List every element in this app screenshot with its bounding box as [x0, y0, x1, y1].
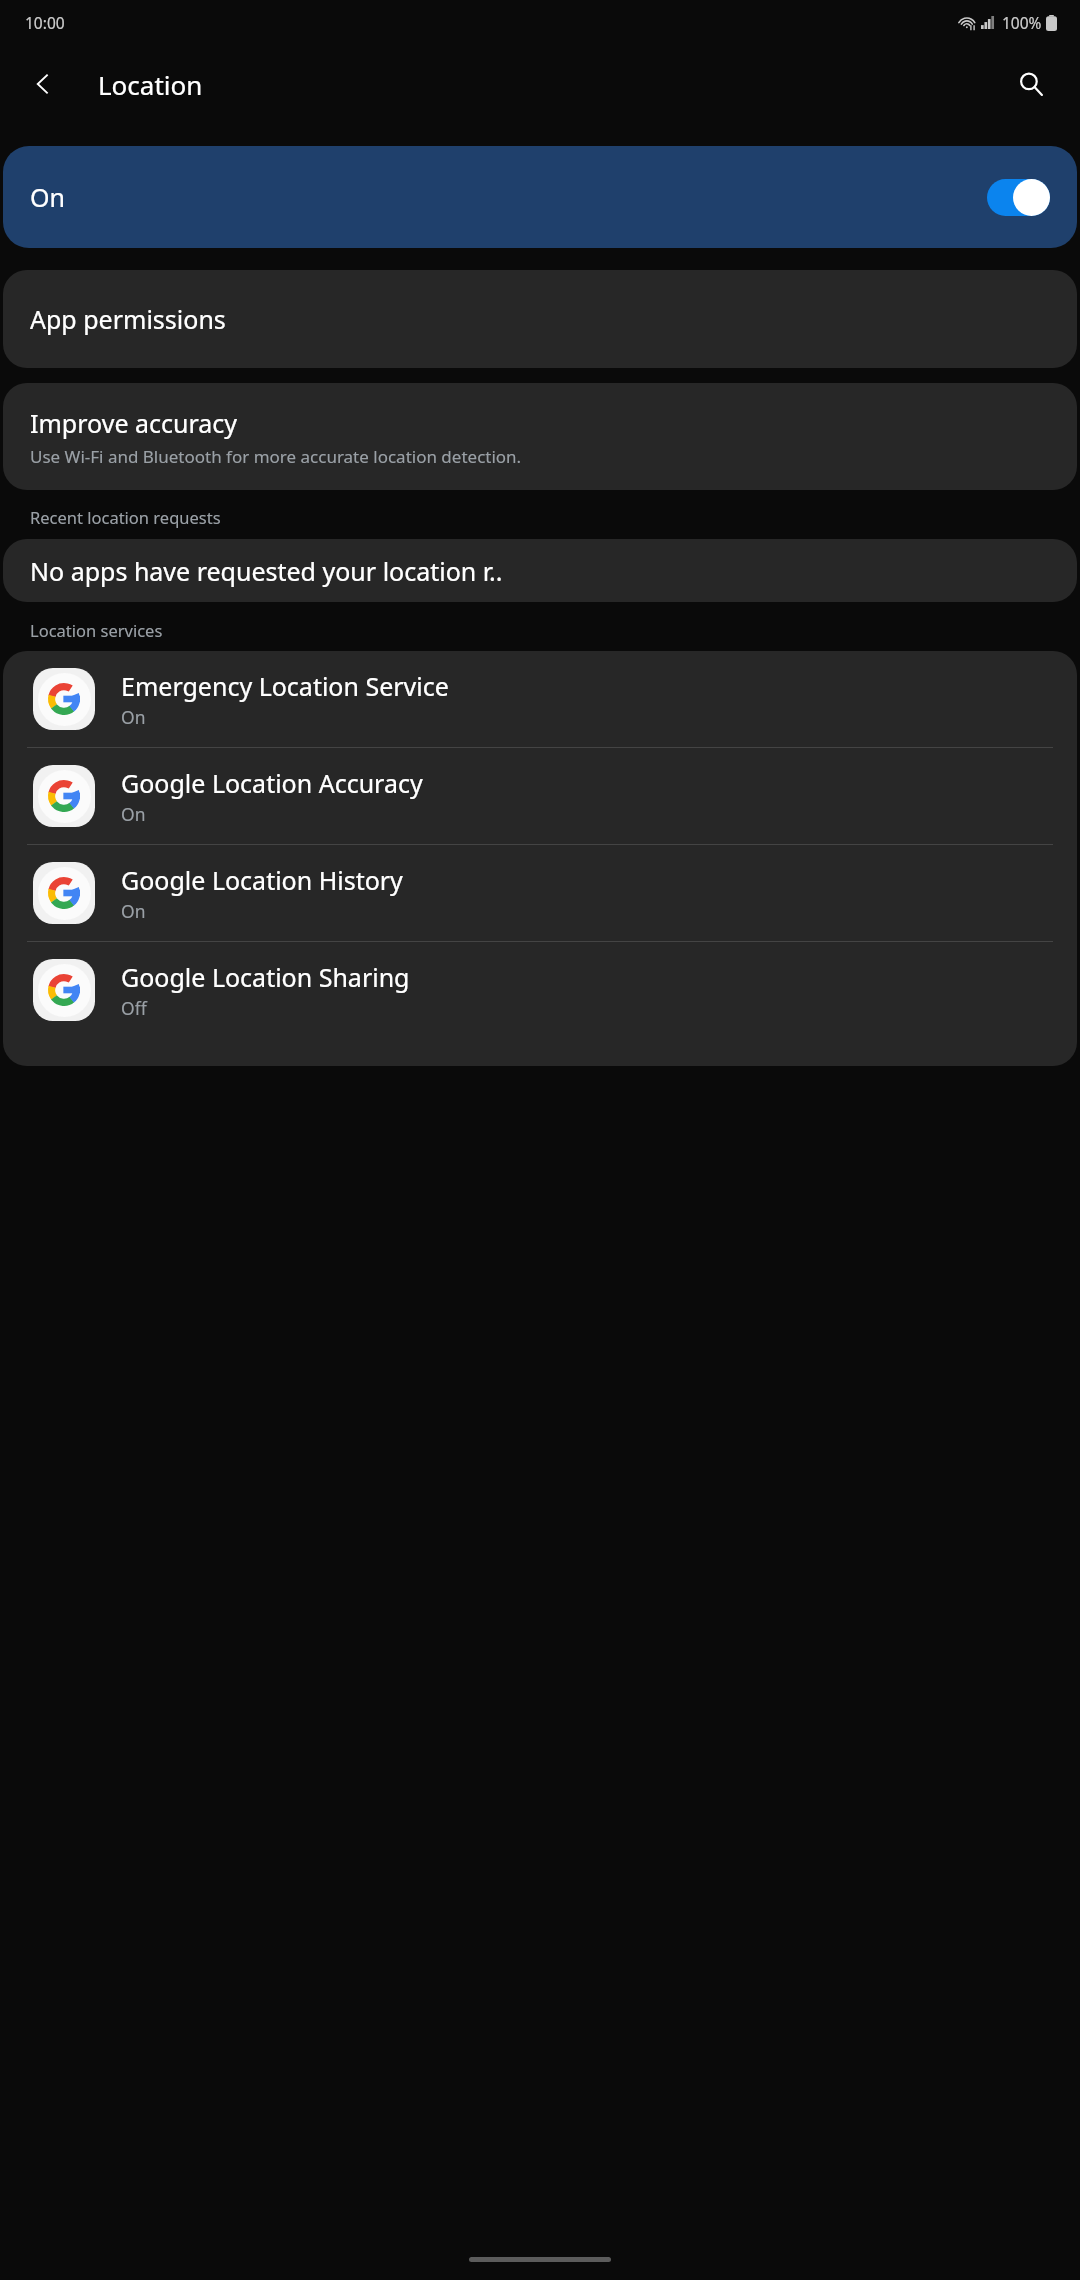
button[interactable]: App permissions	[3, 270, 1077, 368]
staticText: On	[121, 705, 146, 729]
staticText: No apps have requested your location r..	[30, 554, 503, 588]
button[interactable]: Google Location Sharing	[3, 942, 1077, 1038]
staticText: Google Location Accuracy	[121, 766, 423, 800]
button[interactable]: Back	[12, 53, 74, 115]
staticText: 100%	[1002, 12, 1042, 33]
button[interactable]: No apps have requested your location r..	[3, 539, 1077, 602]
button[interactable]: Search	[1000, 53, 1062, 115]
staticText: Emergency Location Service	[121, 669, 449, 703]
button[interactable]: Improve accuracy	[3, 383, 1077, 490]
button[interactable]: Google Location Accuracy	[3, 748, 1077, 844]
staticText: Google Location Sharing	[121, 960, 410, 994]
staticText: Recent location requests	[30, 506, 221, 528]
button[interactable]: Google Location History	[3, 845, 1077, 941]
staticText: On	[121, 802, 146, 826]
staticText: Use Wi-Fi and Bluetooth for more accurat…	[30, 445, 522, 468]
staticText: On	[30, 180, 65, 214]
staticText: 10:00	[25, 12, 65, 33]
staticText: Google Location History	[121, 863, 403, 897]
staticText: Location	[98, 67, 203, 102]
staticText: Location services	[30, 619, 163, 641]
staticText: App permissions	[30, 302, 226, 336]
staticText: Improve accuracy	[30, 406, 238, 440]
button[interactable]: Emergency Location Service	[3, 651, 1077, 747]
staticText: Off	[121, 996, 147, 1020]
staticText: On	[121, 899, 146, 923]
button[interactable]: On	[3, 146, 1077, 248]
